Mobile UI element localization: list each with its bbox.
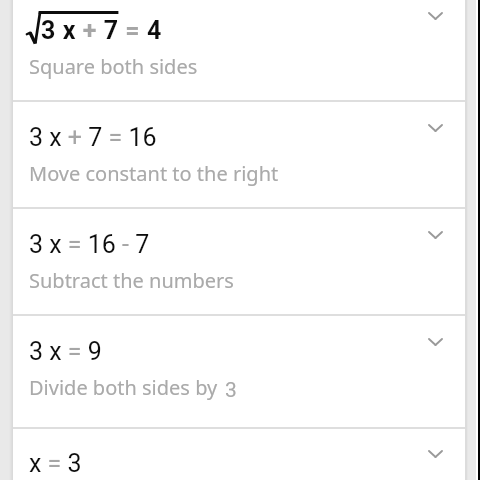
- staticText: Divide both sides by: [29, 374, 218, 401]
- button[interactable]: 3 x = 9: [13, 316, 465, 429]
- button[interactable]: Expand step: [411, 318, 459, 366]
- staticText: Move constant to the right: [29, 160, 279, 187]
- button[interactable]: Expand step: [411, 0, 459, 40]
- button[interactable]: x = 3: [13, 428, 465, 480]
- button[interactable]: Expand step: [411, 104, 459, 152]
- button[interactable]: 3 x + 7 = 16: [13, 102, 465, 209]
- staticText: Square both sides: [29, 53, 198, 80]
- staticText: 3 x + 7 = 16: [29, 123, 157, 152]
- staticText: 3 x = 9: [29, 337, 102, 366]
- button[interactable]: Expand step: [411, 211, 459, 259]
- staticText: 3 x + 7 = 4: [41, 16, 162, 45]
- button[interactable]: Expand step: [411, 430, 459, 478]
- button[interactable]: 3 x + 7 = 4: [13, 0, 465, 102]
- staticText: Subtract the numbers: [29, 267, 234, 294]
- button[interactable]: 3 x = 16 - 7: [13, 209, 465, 316]
- staticText: x = 3: [29, 449, 82, 478]
- staticText: 3: [225, 378, 237, 403]
- staticText: 3 x = 16 - 7: [29, 230, 150, 259]
